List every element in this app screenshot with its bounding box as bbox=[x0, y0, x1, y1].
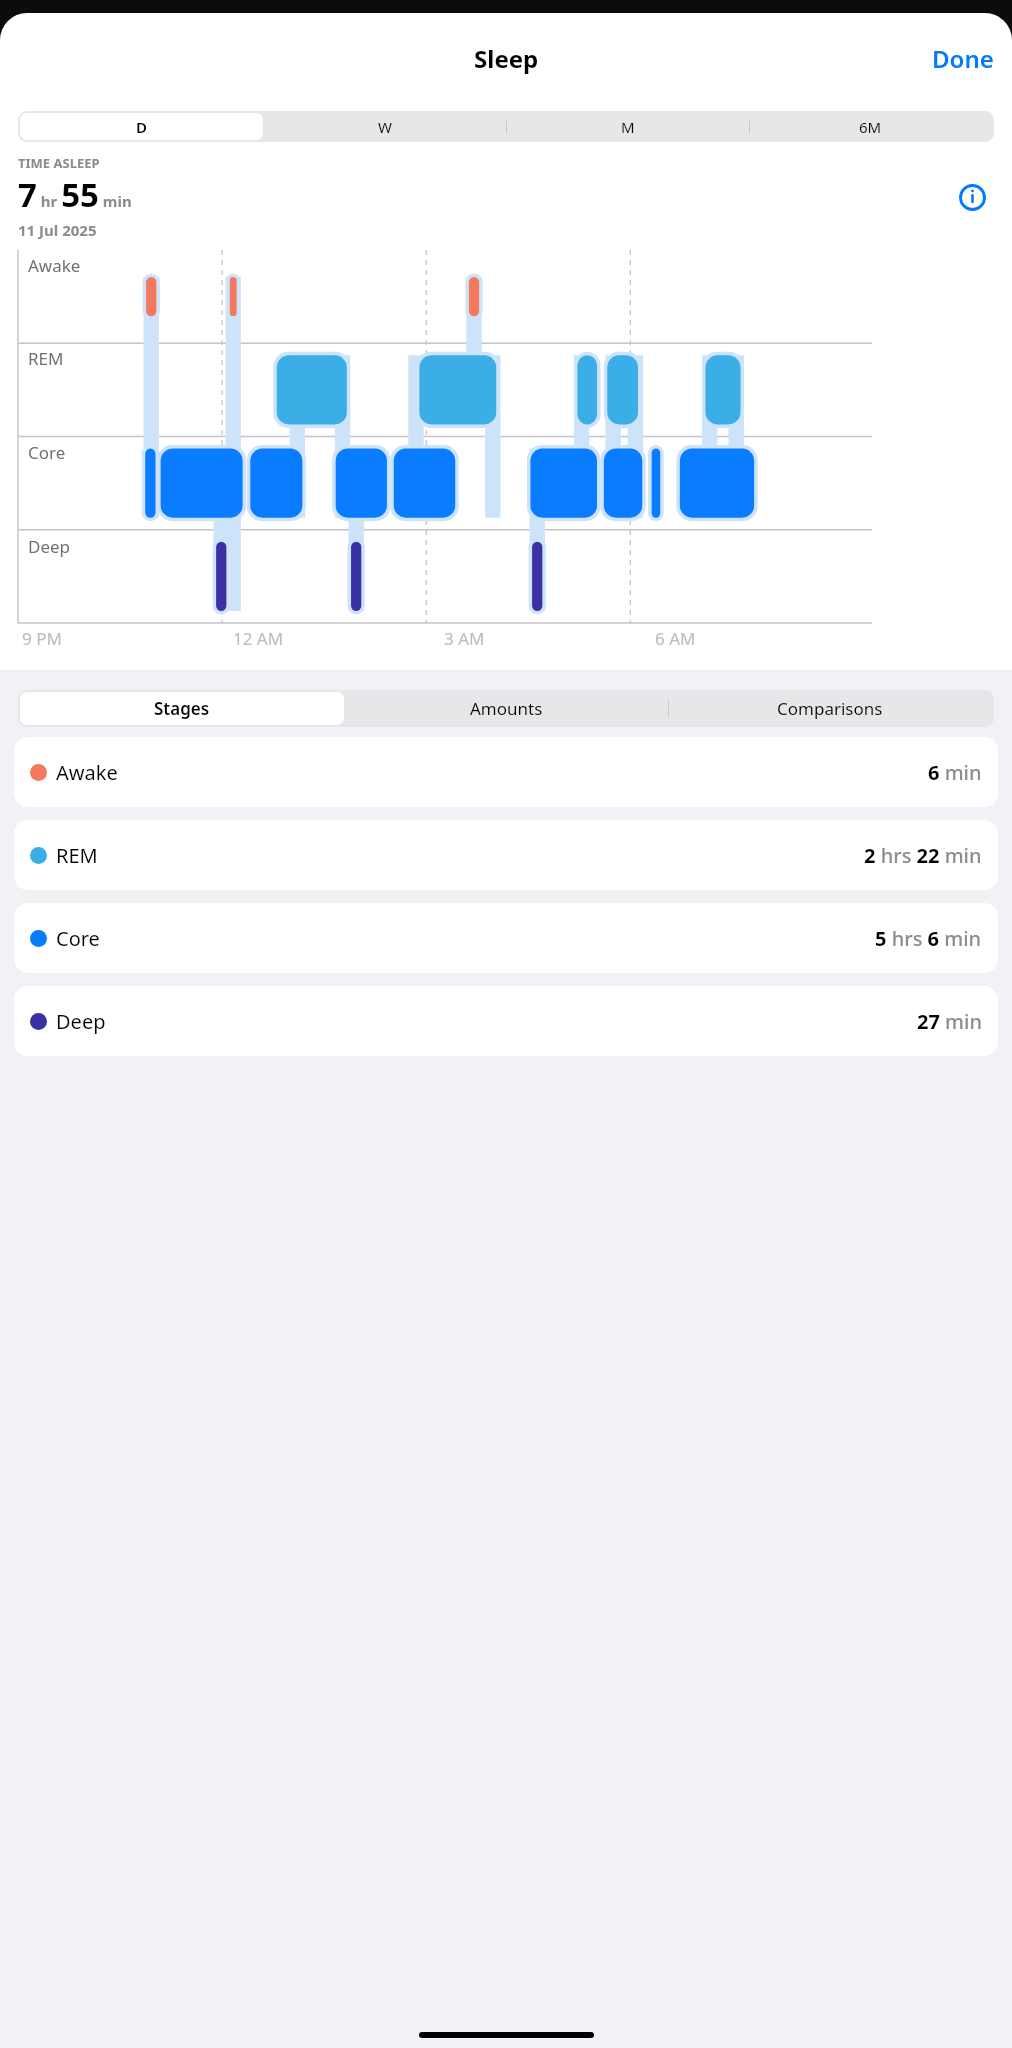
staticText: Core bbox=[56, 925, 100, 952]
button[interactable]: Awake bbox=[14, 737, 998, 807]
staticText: Done bbox=[932, 42, 994, 75]
staticText: 6M bbox=[859, 117, 882, 137]
button[interactable]: Stages bbox=[20, 692, 344, 725]
button[interactable]: W bbox=[263, 113, 506, 140]
staticText: 6 min bbox=[928, 759, 982, 786]
button[interactable]: 6M bbox=[749, 113, 992, 140]
staticText: D bbox=[136, 117, 147, 137]
staticText: Amounts bbox=[470, 697, 543, 720]
staticText: Awake bbox=[28, 254, 81, 277]
button[interactable]: Deep bbox=[14, 986, 998, 1056]
staticText: Comparisons bbox=[777, 697, 883, 720]
staticText: W bbox=[378, 117, 392, 137]
staticText: Deep bbox=[56, 1008, 106, 1035]
staticText: 7 hr 55 min bbox=[18, 172, 132, 217]
staticText: 3 AM bbox=[444, 627, 485, 650]
button[interactable]: M bbox=[506, 113, 749, 140]
button[interactable]: Amounts bbox=[344, 692, 668, 725]
staticText: REM bbox=[56, 842, 98, 869]
staticText: Awake bbox=[56, 759, 118, 786]
staticText: 11 Jul 2025 bbox=[18, 220, 97, 240]
staticText: Sleep bbox=[474, 42, 539, 75]
button[interactable]: Comparisons bbox=[668, 692, 992, 725]
staticText: REM bbox=[28, 347, 64, 370]
button[interactable]: D bbox=[20, 113, 263, 140]
staticText: 2 hrs 22 min bbox=[864, 842, 982, 869]
staticText: Core bbox=[28, 441, 66, 464]
staticText: 5 hrs 6 min bbox=[875, 925, 982, 952]
staticText: TIME ASLEEP bbox=[18, 154, 100, 172]
staticText: 6 AM bbox=[655, 627, 696, 650]
staticText: M bbox=[621, 117, 635, 137]
staticText: Deep bbox=[28, 535, 71, 558]
button[interactable]: REM bbox=[14, 820, 998, 890]
button[interactable]: Done bbox=[922, 34, 1004, 83]
staticText: 12 AM bbox=[233, 627, 284, 650]
button[interactable]: Core bbox=[14, 903, 998, 973]
staticText: 27 min bbox=[917, 1008, 982, 1035]
staticText: 9 PM bbox=[22, 627, 62, 650]
staticText: Stages bbox=[154, 697, 210, 720]
button[interactable]: Information bbox=[950, 175, 994, 219]
